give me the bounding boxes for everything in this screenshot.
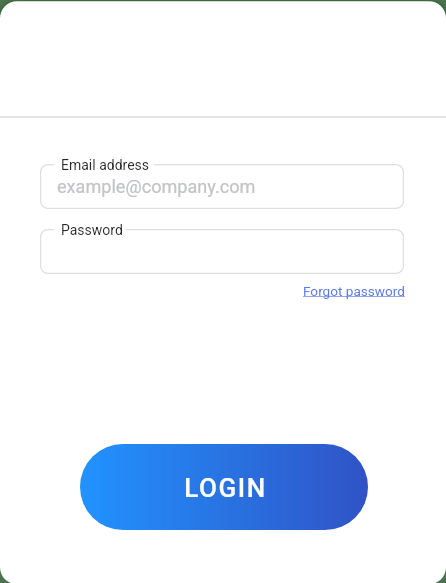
button[interactable]: Email address: [40, 164, 404, 209]
staticText: Email address: [61, 157, 150, 173]
button[interactable]: Password: [40, 229, 404, 274]
staticText: LOGIN: [184, 473, 267, 503]
staticText: Password: [61, 222, 123, 238]
button[interactable]: Forgot password: [303, 283, 405, 299]
staticText: Forgot password: [303, 283, 405, 299]
button[interactable]: LOGIN: [80, 444, 368, 530]
staticText: example@company.com: [57, 176, 256, 197]
